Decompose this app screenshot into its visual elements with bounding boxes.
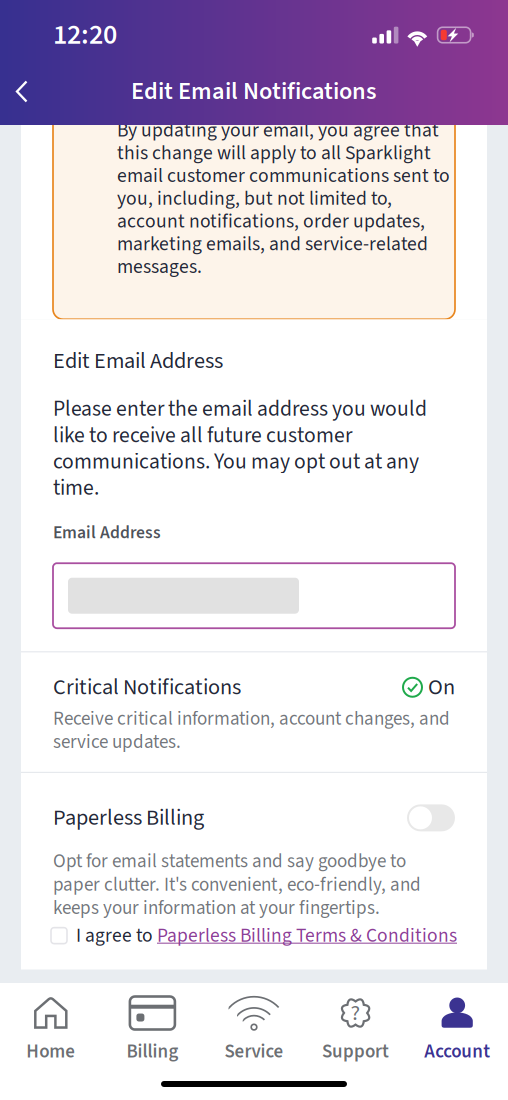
staticText: Account bbox=[424, 1038, 490, 1065]
button[interactable]: Service bbox=[203, 995, 305, 1065]
staticText: Opt for email statements and say goodbye… bbox=[53, 850, 421, 920]
button[interactable]: ? bbox=[305, 995, 406, 1065]
staticText: Receive critical information, account ch… bbox=[53, 707, 450, 754]
staticText: Edit Email Notifications bbox=[131, 74, 377, 109]
staticText: Edit Email Address bbox=[53, 345, 223, 377]
staticText: Please enter the email address you would… bbox=[53, 396, 427, 501]
staticText: Email Address bbox=[53, 520, 161, 545]
staticText: Paperless Billing bbox=[53, 802, 204, 834]
button[interactable]: Account bbox=[406, 995, 508, 1065]
staticText: Service bbox=[224, 1038, 283, 1065]
staticText: 12:20 bbox=[53, 15, 117, 55]
staticText: Billing bbox=[126, 1038, 178, 1065]
button[interactable]: Home bbox=[0, 995, 102, 1065]
button[interactable]: I agree to bbox=[53, 920, 455, 969]
staticText: ? bbox=[351, 997, 361, 1029]
staticText: Home bbox=[26, 1038, 75, 1065]
staticText: On bbox=[428, 671, 455, 703]
staticText: I agree to bbox=[76, 922, 157, 949]
staticText: By updating your email, you agree that t… bbox=[117, 119, 450, 278]
staticText: Paperless Billing Terms & Conditions bbox=[157, 922, 457, 949]
button[interactable]: Billing bbox=[102, 995, 203, 1065]
button[interactable]: Paperless Billing toggle bbox=[407, 804, 455, 831]
staticText: Support bbox=[322, 1038, 389, 1065]
button[interactable]: Back bbox=[0, 67, 50, 116]
staticText: Critical Notifications bbox=[53, 671, 241, 703]
